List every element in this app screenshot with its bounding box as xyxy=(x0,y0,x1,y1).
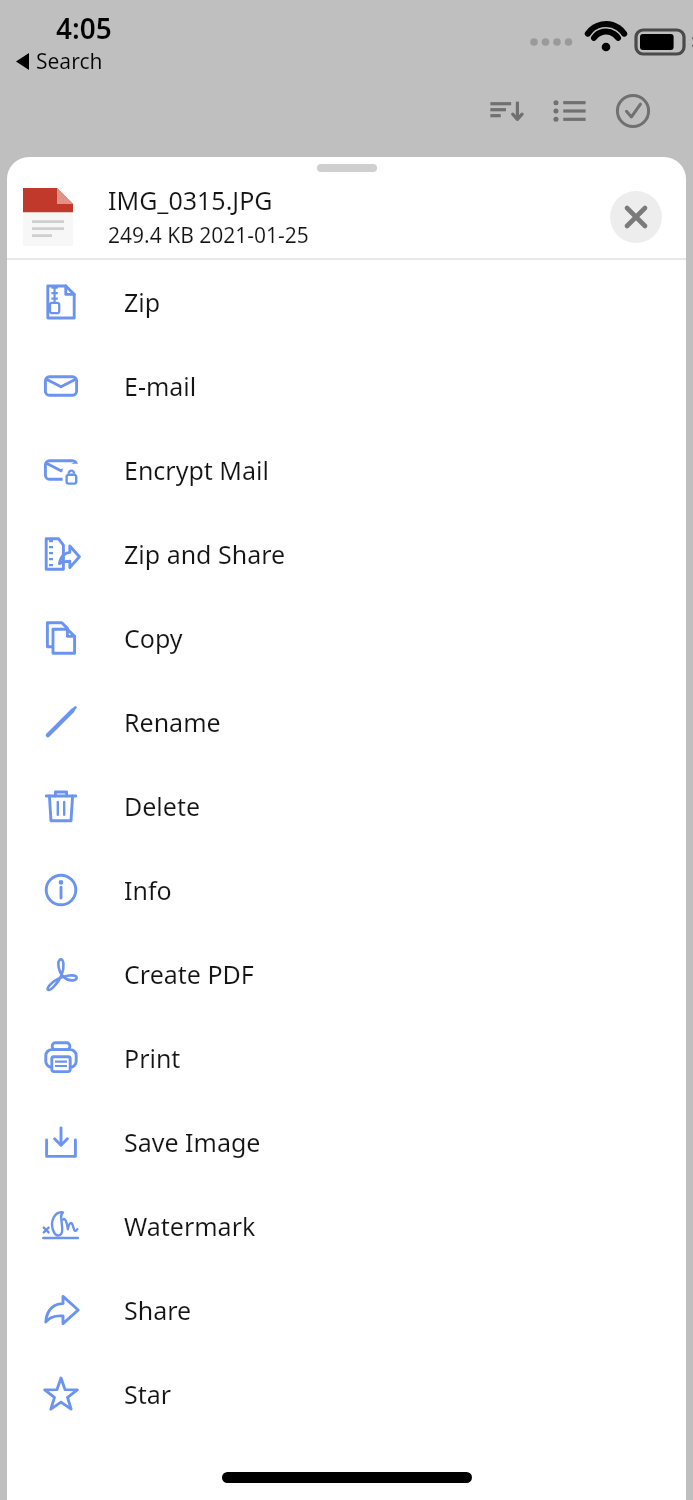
button[interactable]: Delete xyxy=(7,764,686,848)
button[interactable]: Create PDF xyxy=(7,932,686,1016)
staticText: Create PDF xyxy=(124,957,254,991)
staticText: E-mail xyxy=(124,369,197,403)
staticText: Print xyxy=(124,1041,181,1075)
button[interactable]: Save Image xyxy=(7,1100,686,1184)
button[interactable]: Watermark xyxy=(7,1184,686,1268)
button[interactable]: Sort xyxy=(481,85,533,137)
button[interactable]: Star xyxy=(7,1352,686,1436)
button[interactable]: E-mail xyxy=(7,344,686,428)
button[interactable]: List view xyxy=(544,85,596,137)
button[interactable]: Info xyxy=(7,848,686,932)
staticText: Rename xyxy=(124,705,221,739)
staticText: Encrypt Mail xyxy=(124,453,269,487)
staticText: Delete xyxy=(124,789,201,823)
button[interactable]: Copy xyxy=(7,596,686,680)
staticText: Star xyxy=(124,1377,172,1411)
button[interactable]: Zip and Share xyxy=(7,512,686,596)
button[interactable]: Share xyxy=(7,1268,686,1352)
staticText: Search xyxy=(36,47,103,76)
staticText: Zip and Share xyxy=(124,537,286,571)
staticText: Share xyxy=(124,1293,192,1327)
staticText: Watermark xyxy=(124,1209,256,1243)
button[interactable]: Close xyxy=(610,191,662,243)
staticText: 4:05 xyxy=(56,9,112,47)
staticText: IMG_0315.JPG xyxy=(108,183,273,217)
button[interactable]: Print xyxy=(7,1016,686,1100)
button[interactable]: Encrypt Mail xyxy=(7,428,686,512)
staticText: Info xyxy=(124,873,172,907)
staticText: 249.4 KB 2021-01-25 xyxy=(108,221,309,250)
button[interactable]: Select xyxy=(607,85,659,137)
button[interactable]: Zip xyxy=(7,260,686,344)
staticText: Save Image xyxy=(124,1125,261,1159)
button[interactable]: IMG_0315.JPG xyxy=(7,175,686,258)
button[interactable]: Rename xyxy=(7,680,686,764)
button[interactable]: Search xyxy=(8,43,111,80)
staticText: Zip xyxy=(124,285,161,319)
staticText: Copy xyxy=(124,621,183,655)
